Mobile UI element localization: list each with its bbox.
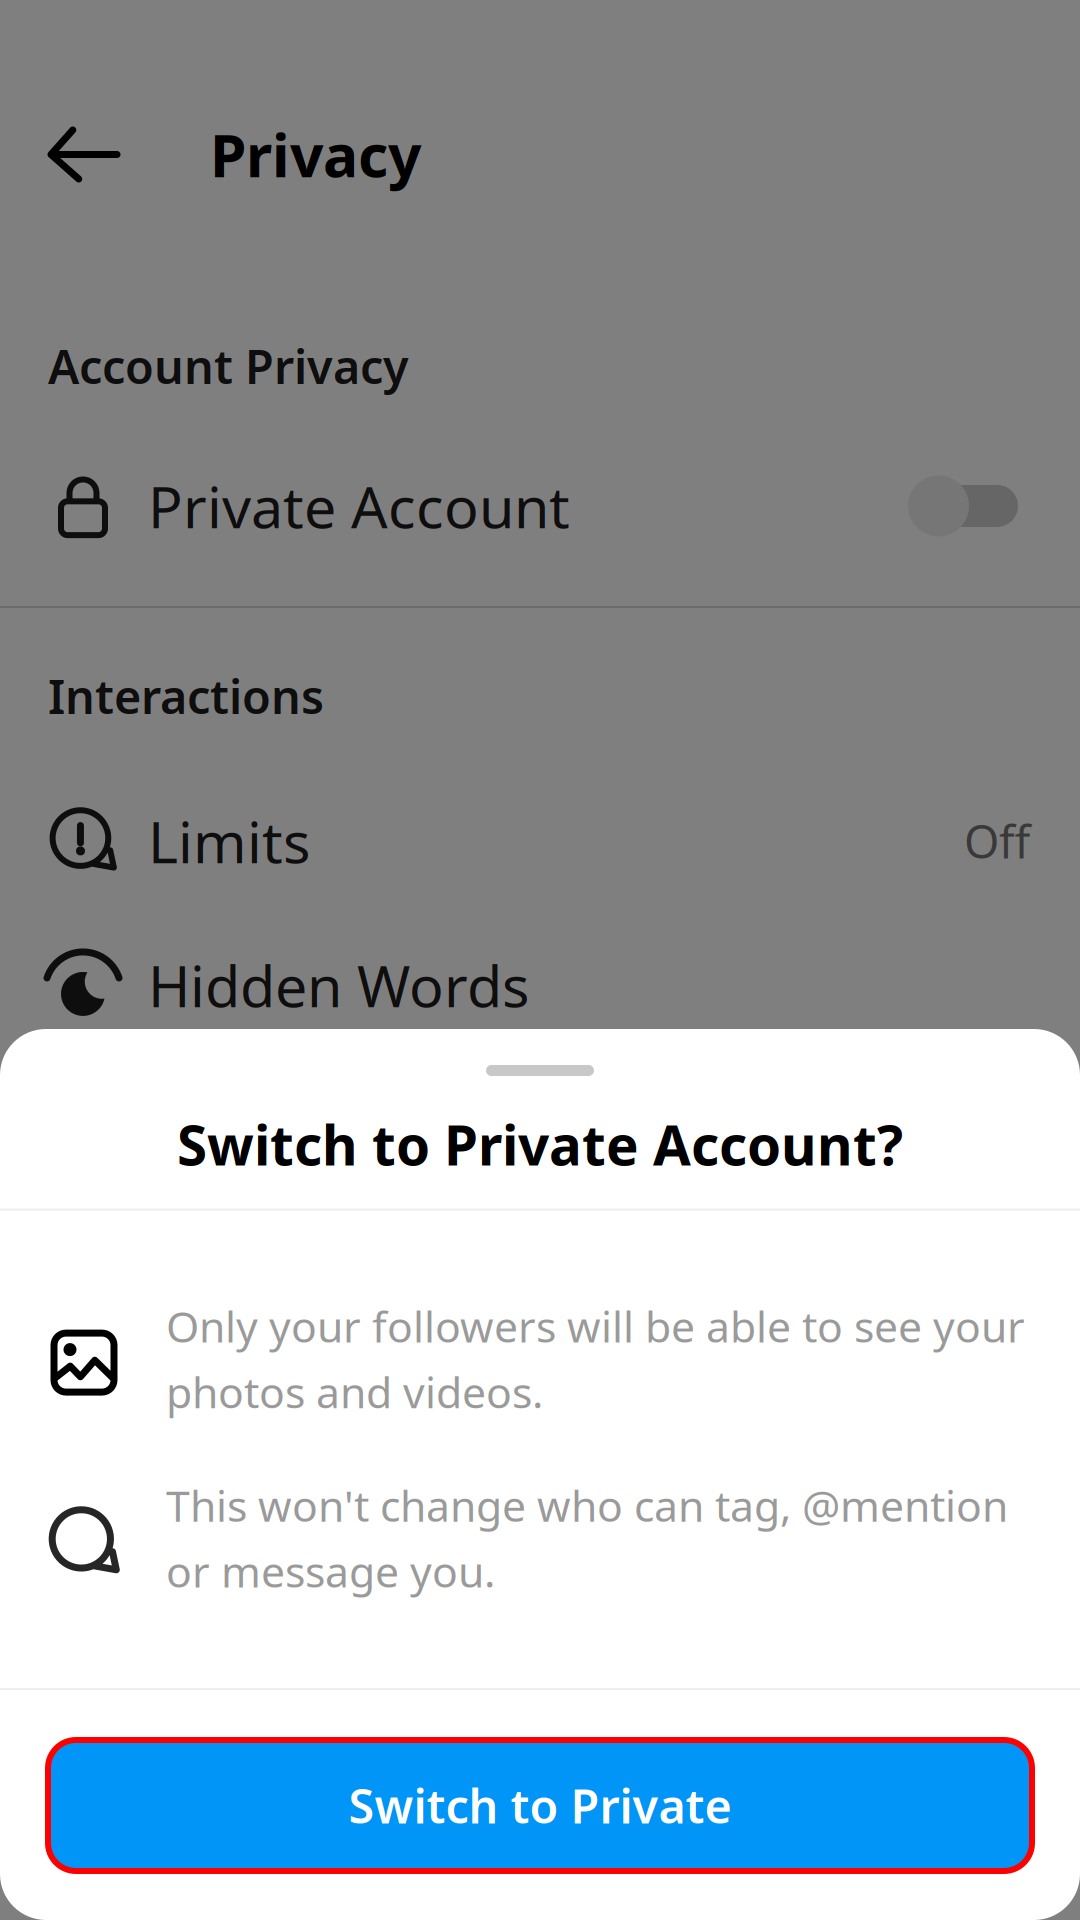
button[interactable]: Switch to Private: [0, 1740, 1080, 1871]
staticText: Interactions: [48, 665, 324, 727]
staticText: Limits: [148, 803, 310, 879]
staticText: Switch to Private: [348, 1774, 731, 1836]
staticText: Private Account: [148, 468, 570, 544]
staticText: Off: [964, 811, 1030, 871]
button[interactable]: Back: [29, 104, 139, 205]
staticText: Hidden Words: [148, 947, 529, 1023]
button[interactable]: Limits: [0, 769, 1080, 913]
staticText: This won't change who can tag, @mention …: [166, 1477, 1008, 1599]
button[interactable]: Hidden Words: [0, 913, 1080, 1057]
staticText: Account Privacy: [48, 335, 409, 397]
staticText: Only your followers will be able to see …: [166, 1298, 1025, 1420]
staticText: Privacy: [210, 115, 421, 193]
staticText: Switch to Private Account?: [177, 1108, 903, 1181]
button[interactable]: Private Account: [0, 440, 1080, 572]
